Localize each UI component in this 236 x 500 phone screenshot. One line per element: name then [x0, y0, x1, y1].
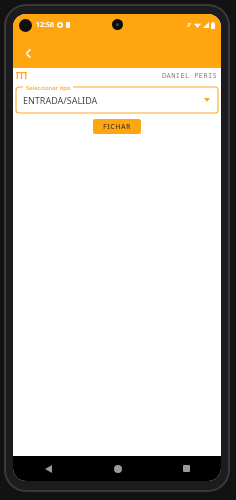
button[interactable]: Back	[17, 42, 39, 64]
button[interactable]: Recent apps	[152, 456, 221, 481]
staticText: ENTRADA/SALIDA	[23, 94, 98, 106]
button[interactable]: Back	[13, 456, 83, 481]
button[interactable]: Open dropdown	[201, 94, 213, 106]
staticText: DANIEL PERIS	[162, 71, 218, 81]
button[interactable]: FICHAR	[93, 119, 141, 134]
button[interactable]: Home	[83, 456, 152, 481]
staticText: FICHAR	[103, 122, 131, 132]
staticText: 12:56	[36, 20, 54, 30]
staticText: Seleccionar tipo	[26, 84, 71, 92]
